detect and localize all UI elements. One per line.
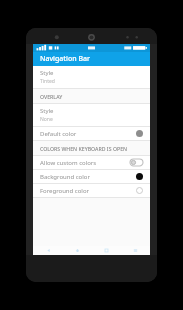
staticText: Navigation Bar	[40, 54, 90, 64]
staticText: OVERLAY	[40, 93, 63, 100]
button[interactable]: Style	[33, 104, 150, 126]
staticText: Default color	[40, 130, 136, 138]
staticText: Tinted	[40, 78, 55, 85]
button[interactable]: Style	[33, 66, 150, 88]
button[interactable]: Back	[33, 246, 63, 255]
button[interactable]: Allow custom colors toggle	[130, 159, 143, 166]
staticText: Background color	[40, 173, 136, 181]
staticText: Foreground color	[40, 187, 136, 195]
button[interactable]: Allow custom colors	[33, 156, 150, 169]
staticText: Style	[40, 69, 54, 77]
staticText: None	[40, 116, 53, 123]
button[interactable]: Home	[63, 246, 92, 255]
button[interactable]: Foreground color	[33, 184, 150, 197]
button[interactable]: Navigation Bar	[33, 52, 150, 66]
staticText: COLORS WHEN KEYBOARD IS OPEN	[40, 145, 128, 152]
staticText: Style	[40, 107, 54, 115]
button[interactable]: Menu	[121, 246, 150, 255]
button[interactable]: Recents	[92, 246, 121, 255]
button[interactable]: Background color	[33, 170, 150, 183]
button[interactable]: Default color	[33, 127, 150, 140]
staticText: Allow custom colors	[40, 159, 130, 167]
